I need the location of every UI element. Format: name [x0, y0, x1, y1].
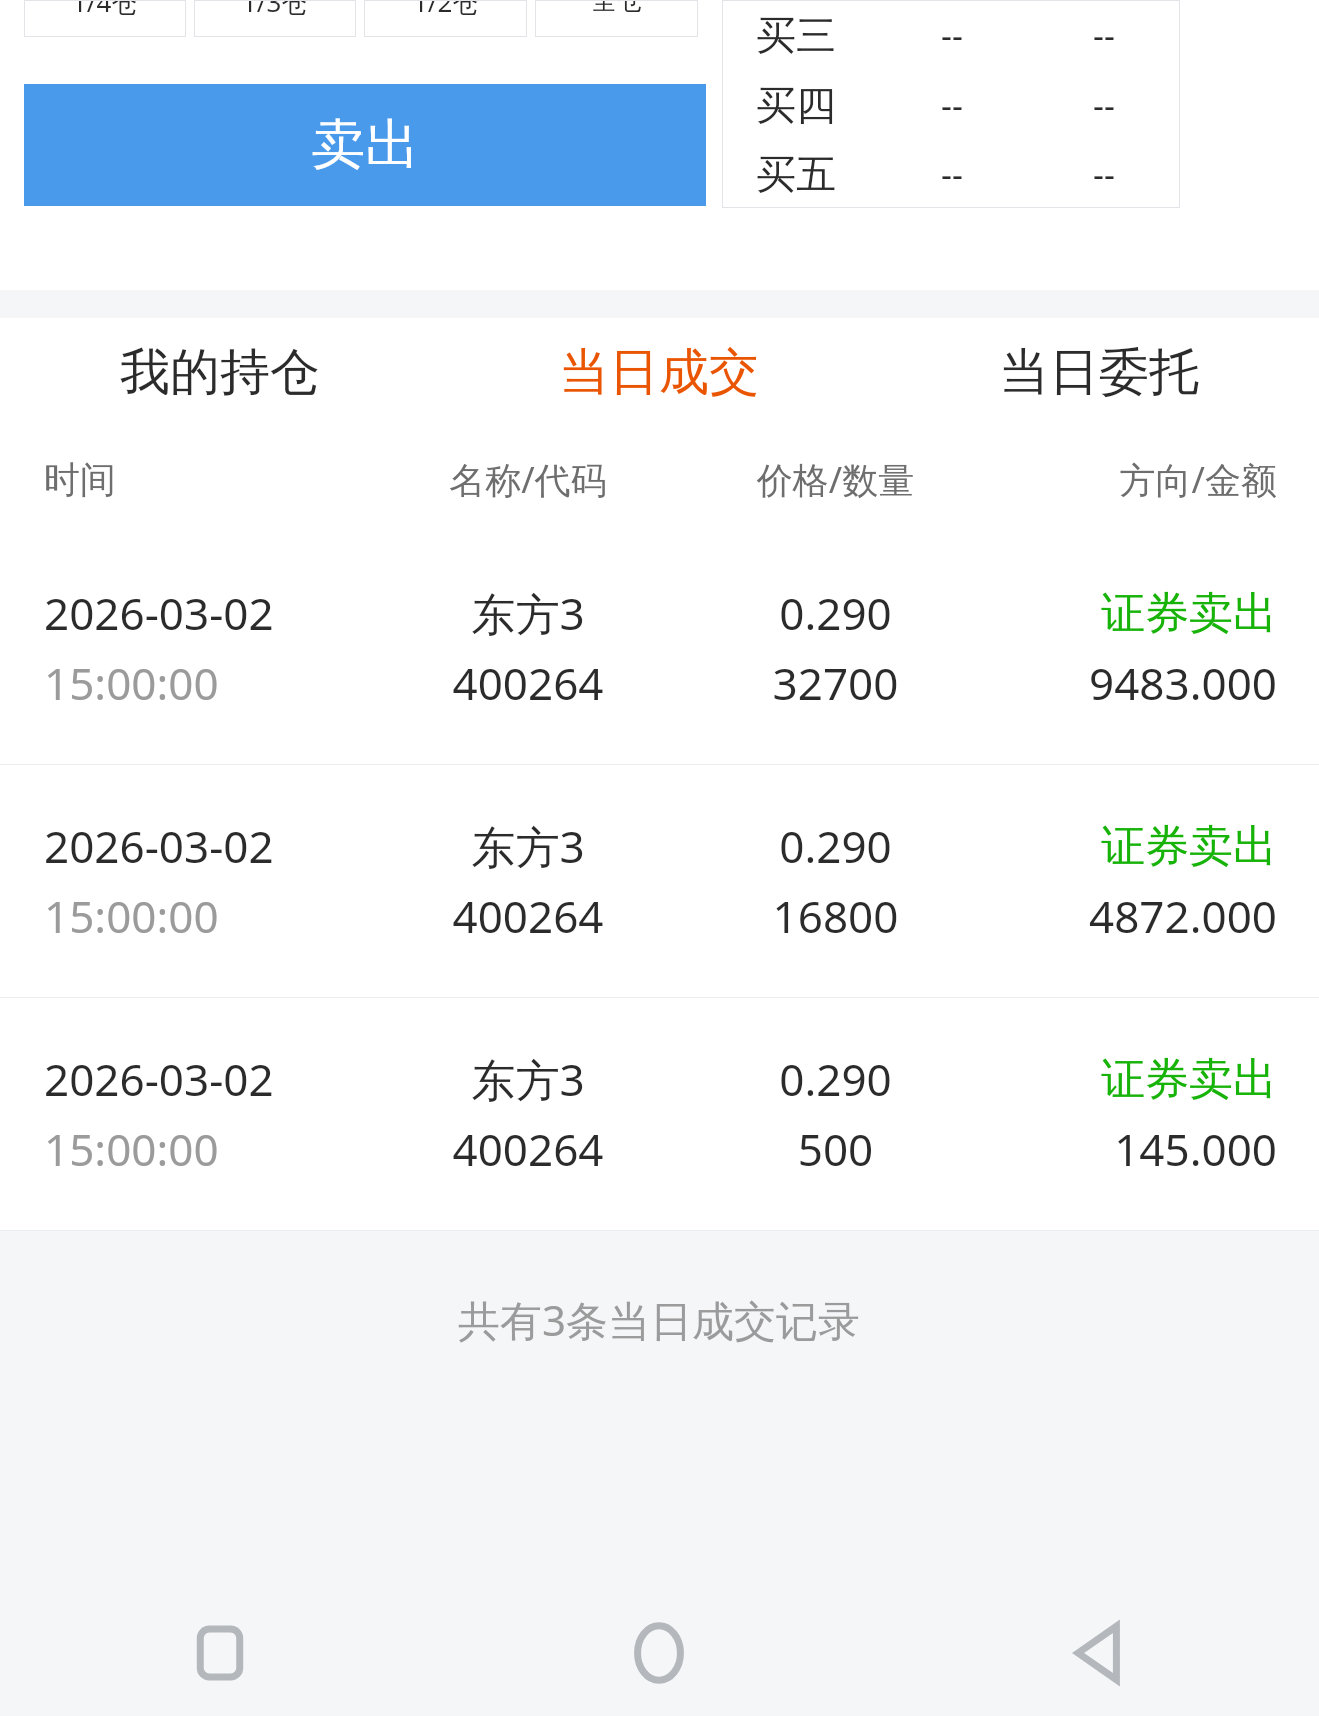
staticText: 15:00:00	[44, 1119, 368, 1179]
staticText: --	[876, 151, 1028, 197]
staticText: 400264	[368, 886, 688, 946]
staticText: 4872.000	[983, 886, 1277, 946]
button[interactable]: 1/2仓	[364, 0, 527, 37]
staticText: 当日成交	[559, 341, 759, 404]
button[interactable]: Back	[879, 1590, 1319, 1716]
staticText: --	[876, 12, 1028, 58]
staticText: 2026-03-02	[44, 816, 368, 876]
staticText: 方向/金额	[983, 455, 1277, 504]
staticText: 400264	[368, 1119, 688, 1179]
staticText: 32700	[688, 653, 983, 713]
button[interactable]: Home	[439, 1590, 879, 1716]
staticText: 0.290	[688, 583, 983, 643]
staticText: 证券卖出	[983, 819, 1277, 874]
staticText: 0.290	[688, 816, 983, 876]
button[interactable]: 2026-03-02	[0, 532, 1319, 764]
button[interactable]: 1/4仓	[24, 0, 186, 37]
staticText: --	[876, 82, 1028, 128]
staticText: 证券卖出	[983, 586, 1277, 641]
staticText: 2026-03-02	[44, 583, 368, 643]
staticText: 名称/代码	[368, 455, 688, 504]
staticText: --	[1028, 12, 1180, 58]
button[interactable]: 全仓	[535, 0, 698, 37]
staticText: 价格/数量	[688, 455, 983, 504]
staticText: 1/4仓	[72, 0, 138, 20]
staticText: 东方3	[368, 1049, 688, 1109]
button[interactable]: 1/3仓	[194, 0, 356, 37]
staticText: 证券卖出	[983, 1052, 1277, 1107]
staticText: 买四	[756, 80, 876, 130]
staticText: 16800	[688, 886, 983, 946]
staticText: 145.000	[983, 1119, 1277, 1179]
staticText: 1/2仓	[413, 0, 479, 20]
button[interactable]: 2026-03-02	[0, 765, 1319, 997]
staticText: 15:00:00	[44, 886, 368, 946]
staticText: 共有3条当日成交记录	[458, 1291, 861, 1348]
button[interactable]: 当日成交	[439, 318, 879, 426]
button[interactable]: 卖出	[24, 84, 706, 206]
staticText: --	[1028, 82, 1180, 128]
staticText: 时间	[44, 457, 368, 502]
staticText: 我的持仓	[120, 341, 320, 404]
staticText: 买三	[756, 10, 876, 60]
staticText: 500	[688, 1119, 983, 1179]
staticText: 卖出	[311, 111, 419, 179]
staticText: 15:00:00	[44, 653, 368, 713]
staticText: 1/3仓	[242, 0, 308, 20]
staticText: 2026-03-02	[44, 1049, 368, 1109]
button[interactable]: 我的持仓	[0, 318, 439, 426]
staticText: 当日委托	[999, 341, 1199, 404]
staticText: 400264	[368, 653, 688, 713]
staticText: 买五	[756, 149, 876, 199]
staticText: 9483.000	[983, 653, 1277, 713]
staticText: 东方3	[368, 816, 688, 876]
staticText: --	[1028, 151, 1180, 197]
button[interactable]: 2026-03-02	[0, 998, 1319, 1230]
button[interactable]: 当日委托	[879, 318, 1319, 426]
button[interactable]: Recent apps	[0, 1590, 439, 1716]
staticText: 0.290	[688, 1049, 983, 1109]
staticText: 全仓	[591, 0, 643, 17]
staticText: 东方3	[368, 583, 688, 643]
